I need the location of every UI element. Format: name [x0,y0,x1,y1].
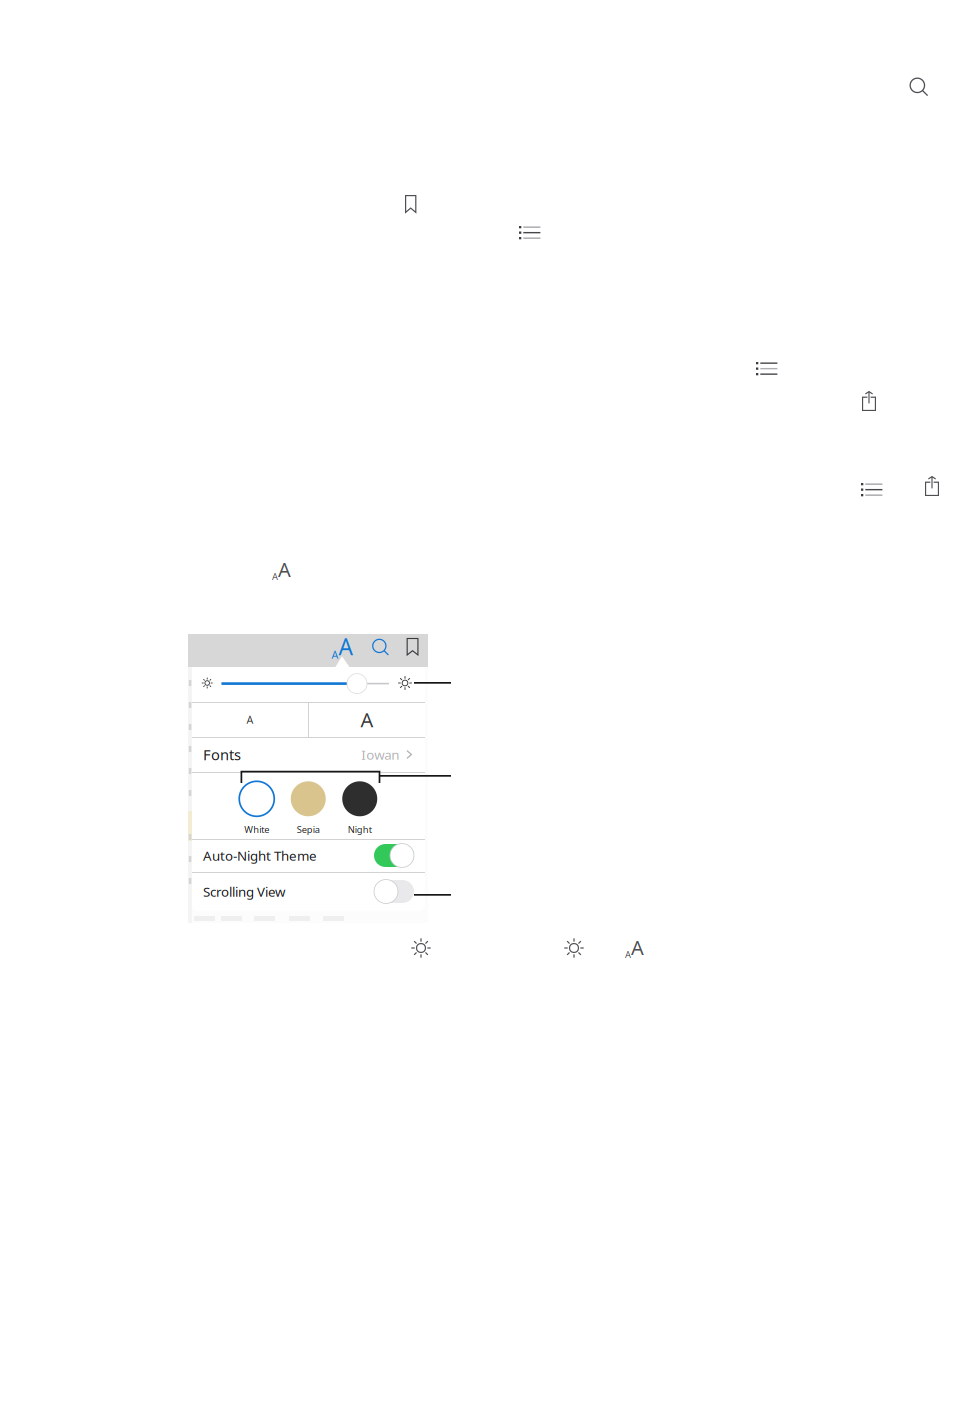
staticText: A [625,948,631,961]
button[interactable]: Share [862,391,876,411]
staticText: Iowan [361,746,399,763]
staticText: Night [348,823,372,836]
button[interactable]: Brightness [564,938,584,958]
button[interactable]: Table of contents [861,483,882,496]
button[interactable]: Search [372,638,389,656]
staticText: A [272,570,278,583]
staticText: A [246,712,253,727]
button[interactable]: Bookmark [407,638,418,655]
staticText: White [244,823,269,836]
button[interactable]: Share [925,476,939,496]
button[interactable]: Text size [331,631,352,662]
button[interactable]: A [309,702,425,737]
button[interactable]: Search [909,77,929,97]
button[interactable]: Bookmark [405,195,416,213]
button[interactable]: A [192,702,308,737]
button[interactable]: Scrolling View [192,872,425,911]
button[interactable]: Fonts [192,737,425,772]
staticText: A [631,934,644,961]
staticText: A [360,706,373,733]
staticText: Fonts [203,745,241,764]
staticText: A [338,631,352,662]
button[interactable]: Brightness [411,938,431,958]
button[interactable]: Auto-Night Theme [192,839,425,872]
button[interactable]: Table of contents [519,226,540,239]
button[interactable]: Sepia [282,781,334,836]
button[interactable]: Text size [272,556,291,583]
staticText: Scrolling View [203,883,285,900]
staticText: Auto-Night Theme [203,847,317,864]
button[interactable]: Night [334,781,385,836]
button[interactable]: Table of contents [756,362,777,375]
button[interactable]: Text size [625,934,644,961]
staticText: A [331,647,338,662]
staticText: Sepia [297,823,320,836]
button[interactable]: White [231,781,282,836]
staticText: A [278,556,291,583]
